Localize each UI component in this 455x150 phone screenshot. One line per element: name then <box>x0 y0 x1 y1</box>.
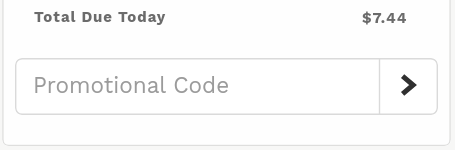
button[interactable]: Promotional Code <box>15 58 380 115</box>
staticText: Total Due Today <box>34 8 167 26</box>
staticText: $7.44 <box>362 9 408 27</box>
button[interactable]: Apply promotional code <box>380 58 438 115</box>
staticText: Promotional Code <box>33 72 230 98</box>
